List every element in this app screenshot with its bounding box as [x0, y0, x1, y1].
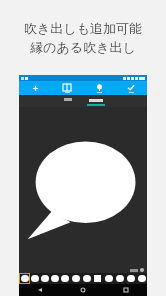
button[interactable]: Done	[115, 81, 147, 95]
button[interactable]: Drawing canvas	[19, 107, 147, 267]
button[interactable]: Shape 2	[30, 273, 40, 284]
button[interactable]: Shape 3	[40, 273, 50, 284]
button[interactable]: 図形	[55, 95, 81, 107]
button[interactable]: Add	[19, 81, 51, 95]
button[interactable]: Balloon	[83, 81, 115, 95]
button[interactable]: Shape 1 selected	[19, 273, 30, 284]
button[interactable]: Shape 5	[60, 273, 70, 284]
button[interactable]: Shape 10	[114, 273, 125, 284]
button[interactable]: Shape 8	[92, 273, 103, 284]
button[interactable]	[81, 95, 111, 107]
button[interactable]: Shape 12	[136, 273, 147, 284]
button[interactable]: Home	[61, 284, 104, 296]
button[interactable]: Layers	[51, 81, 83, 95]
button[interactable]: Shape 7	[81, 273, 92, 284]
button[interactable]: Recents	[104, 284, 147, 296]
button[interactable]: Shape 4	[50, 273, 60, 284]
button[interactable]: Shape 9	[103, 273, 114, 284]
button[interactable]: Color	[140, 268, 144, 272]
button[interactable]: Shape 6	[70, 273, 81, 284]
staticText: 縁のある吹き出し	[0, 39, 166, 55]
button[interactable]: Shape 11	[125, 273, 136, 284]
staticText: 吹き出しも追加可能	[0, 20, 166, 36]
button[interactable]: Back	[19, 284, 61, 296]
